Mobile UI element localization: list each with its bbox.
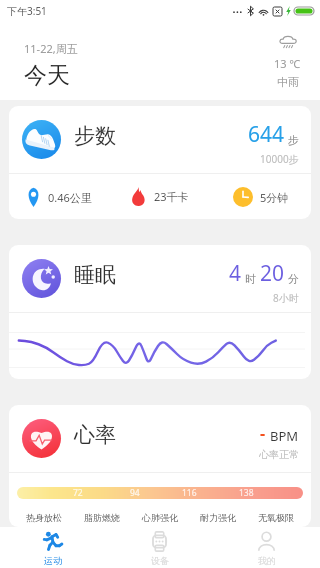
staticText: 运动	[44, 555, 62, 566]
button[interactable]: 心率	[9, 405, 311, 472]
button[interactable]: 设备	[106, 527, 213, 568]
staticText: 11-22,周五	[24, 41, 78, 56]
staticText: 5分钟	[260, 190, 289, 205]
staticText: 4	[229, 259, 242, 288]
staticText: 20	[260, 259, 285, 288]
staticText: 分	[288, 272, 299, 286]
button[interactable]: 睡眠	[9, 245, 311, 312]
staticText: 644	[248, 120, 285, 149]
button[interactable]: 运动	[0, 527, 106, 568]
button[interactable]: 0.46公里	[9, 174, 109, 219]
staticText: 心率	[74, 422, 116, 448]
staticText: 23千卡	[154, 189, 189, 204]
button[interactable]: 23千卡	[109, 174, 210, 219]
staticText: 心率正常	[259, 448, 299, 461]
staticText: 116	[182, 487, 197, 499]
staticText: 设备	[151, 555, 169, 566]
staticText: 步	[288, 133, 299, 147]
staticText: 94	[130, 487, 140, 499]
staticText: 心肺强化	[142, 512, 178, 523]
staticText: 0.46公里	[48, 190, 92, 205]
button[interactable]: 5分钟	[210, 174, 311, 219]
button[interactable]: 步数	[9, 106, 311, 173]
staticText: 138	[239, 487, 254, 499]
staticText: 13 ℃	[274, 56, 301, 71]
staticText: 中雨	[277, 75, 299, 89]
button[interactable]: 我的	[213, 527, 320, 568]
staticText: 无氧极限	[258, 512, 294, 523]
staticText: 10000步	[260, 152, 299, 166]
staticText: 步数	[74, 123, 116, 149]
staticText: 热身放松	[26, 512, 62, 523]
staticText: 72	[73, 487, 83, 499]
staticText: 时	[245, 272, 256, 286]
staticText: 脂肪燃烧	[84, 512, 120, 523]
staticText: 今天	[24, 61, 70, 90]
staticText: -	[260, 422, 266, 444]
staticText: 8小时	[273, 291, 299, 305]
staticText: 我的	[258, 555, 276, 566]
staticText: 下午3:51	[7, 4, 47, 18]
staticText: BPM	[270, 427, 299, 445]
staticText: 睡眠	[74, 262, 116, 288]
staticText: 耐力强化	[200, 512, 236, 523]
